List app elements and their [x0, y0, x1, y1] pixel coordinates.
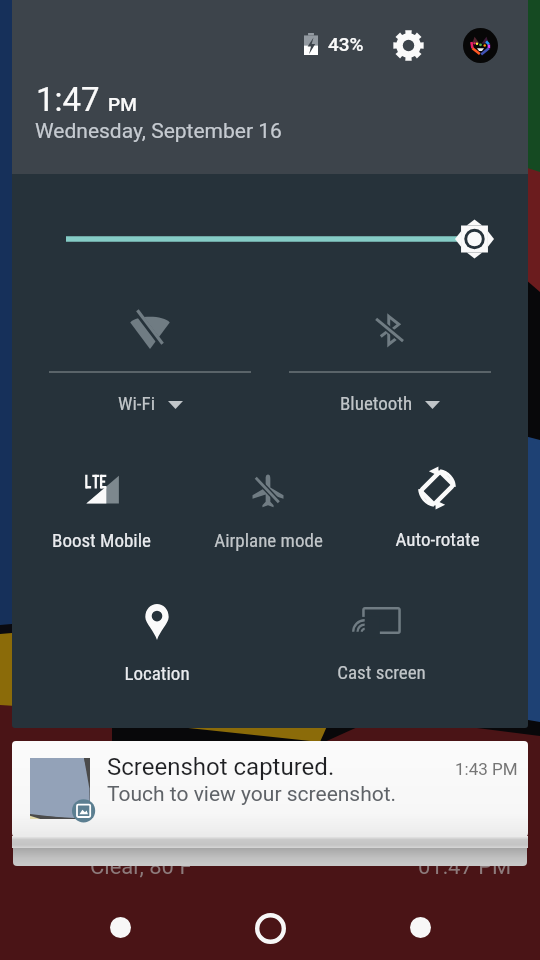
button[interactable]: Recent apps — [390, 897, 450, 957]
staticText: Location — [124, 662, 190, 684]
button[interactable]: Airplane mode — [184, 453, 352, 547]
button[interactable]: Location — [73, 586, 241, 680]
staticText: Clear, 80 F — [90, 854, 192, 880]
staticText: Bluetooth — [340, 392, 413, 414]
button[interactable]: Wi-Fi — [32, 296, 268, 426]
button[interactable]: Brightness — [52, 206, 502, 272]
staticText: Touch to view your screenshot. — [107, 782, 397, 807]
staticText: PM — [108, 93, 137, 115]
staticText: Airplane mode — [214, 529, 323, 551]
staticText: 1:43 PM — [455, 759, 518, 779]
staticText: 01:47 PM — [418, 854, 512, 880]
staticText: 43% — [328, 33, 364, 55]
staticText: Wednesday, September 16 — [35, 119, 282, 144]
button[interactable]: Boost Mobile — [17, 453, 185, 547]
staticText: 1:47 — [36, 80, 100, 119]
button[interactable]: Home — [240, 898, 300, 958]
button[interactable]: Bluetooth — [272, 296, 508, 426]
button[interactable]: User profile — [457, 22, 503, 68]
staticText: Boost Mobile — [52, 529, 151, 551]
staticText: Screenshot captured. — [107, 753, 335, 781]
button[interactable]: Auto-rotate — [353, 452, 521, 546]
button[interactable]: Cast screen — [297, 585, 465, 679]
staticText: Wi-Fi — [118, 392, 156, 414]
button[interactable]: Settings — [385, 22, 431, 68]
button[interactable]: Back — [90, 897, 150, 957]
button[interactable]: Screenshot captured. — [12, 741, 528, 837]
staticText: Cast screen — [337, 661, 426, 683]
staticText: Auto-rotate — [395, 528, 480, 550]
